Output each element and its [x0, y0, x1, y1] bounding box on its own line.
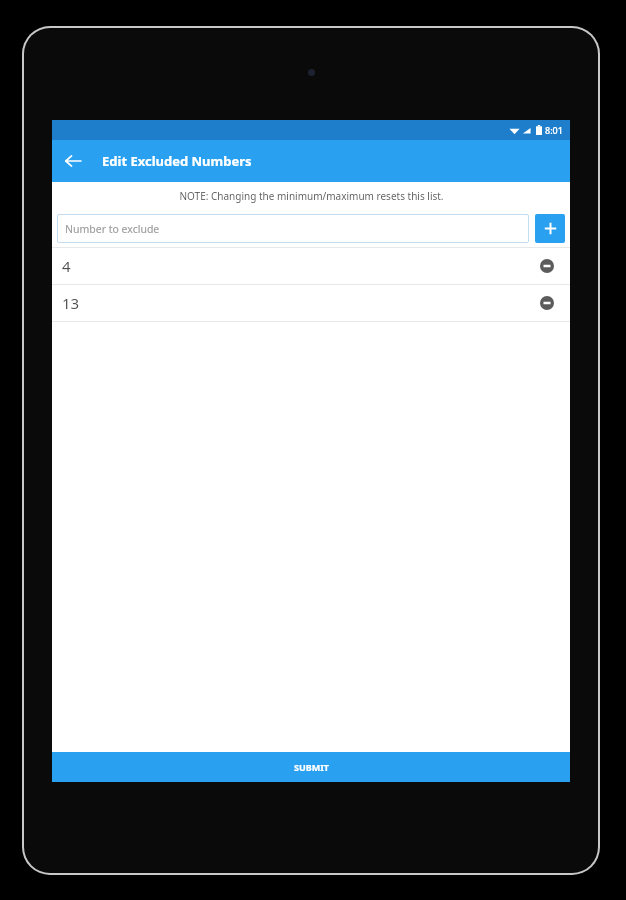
- staticText: SUBMIT: [294, 761, 329, 773]
- button[interactable]: Remove 13: [534, 290, 560, 316]
- staticText: NOTE: Changing the minimum/maximum reset…: [179, 189, 444, 203]
- staticText: 4: [62, 256, 71, 276]
- button[interactable]: Add number: [535, 214, 565, 243]
- button[interactable]: Number to exclude: [57, 214, 529, 243]
- staticText: 8:01: [545, 124, 563, 136]
- button[interactable]: 4: [52, 248, 570, 284]
- staticText: 13: [62, 293, 80, 313]
- button[interactable]: SUBMIT: [52, 752, 570, 782]
- button[interactable]: Remove 4: [534, 253, 560, 279]
- staticText: Number to exclude: [65, 222, 160, 236]
- button[interactable]: Back: [52, 140, 94, 182]
- staticText: Edit Excluded Numbers: [102, 152, 252, 170]
- button[interactable]: 13: [52, 285, 570, 321]
